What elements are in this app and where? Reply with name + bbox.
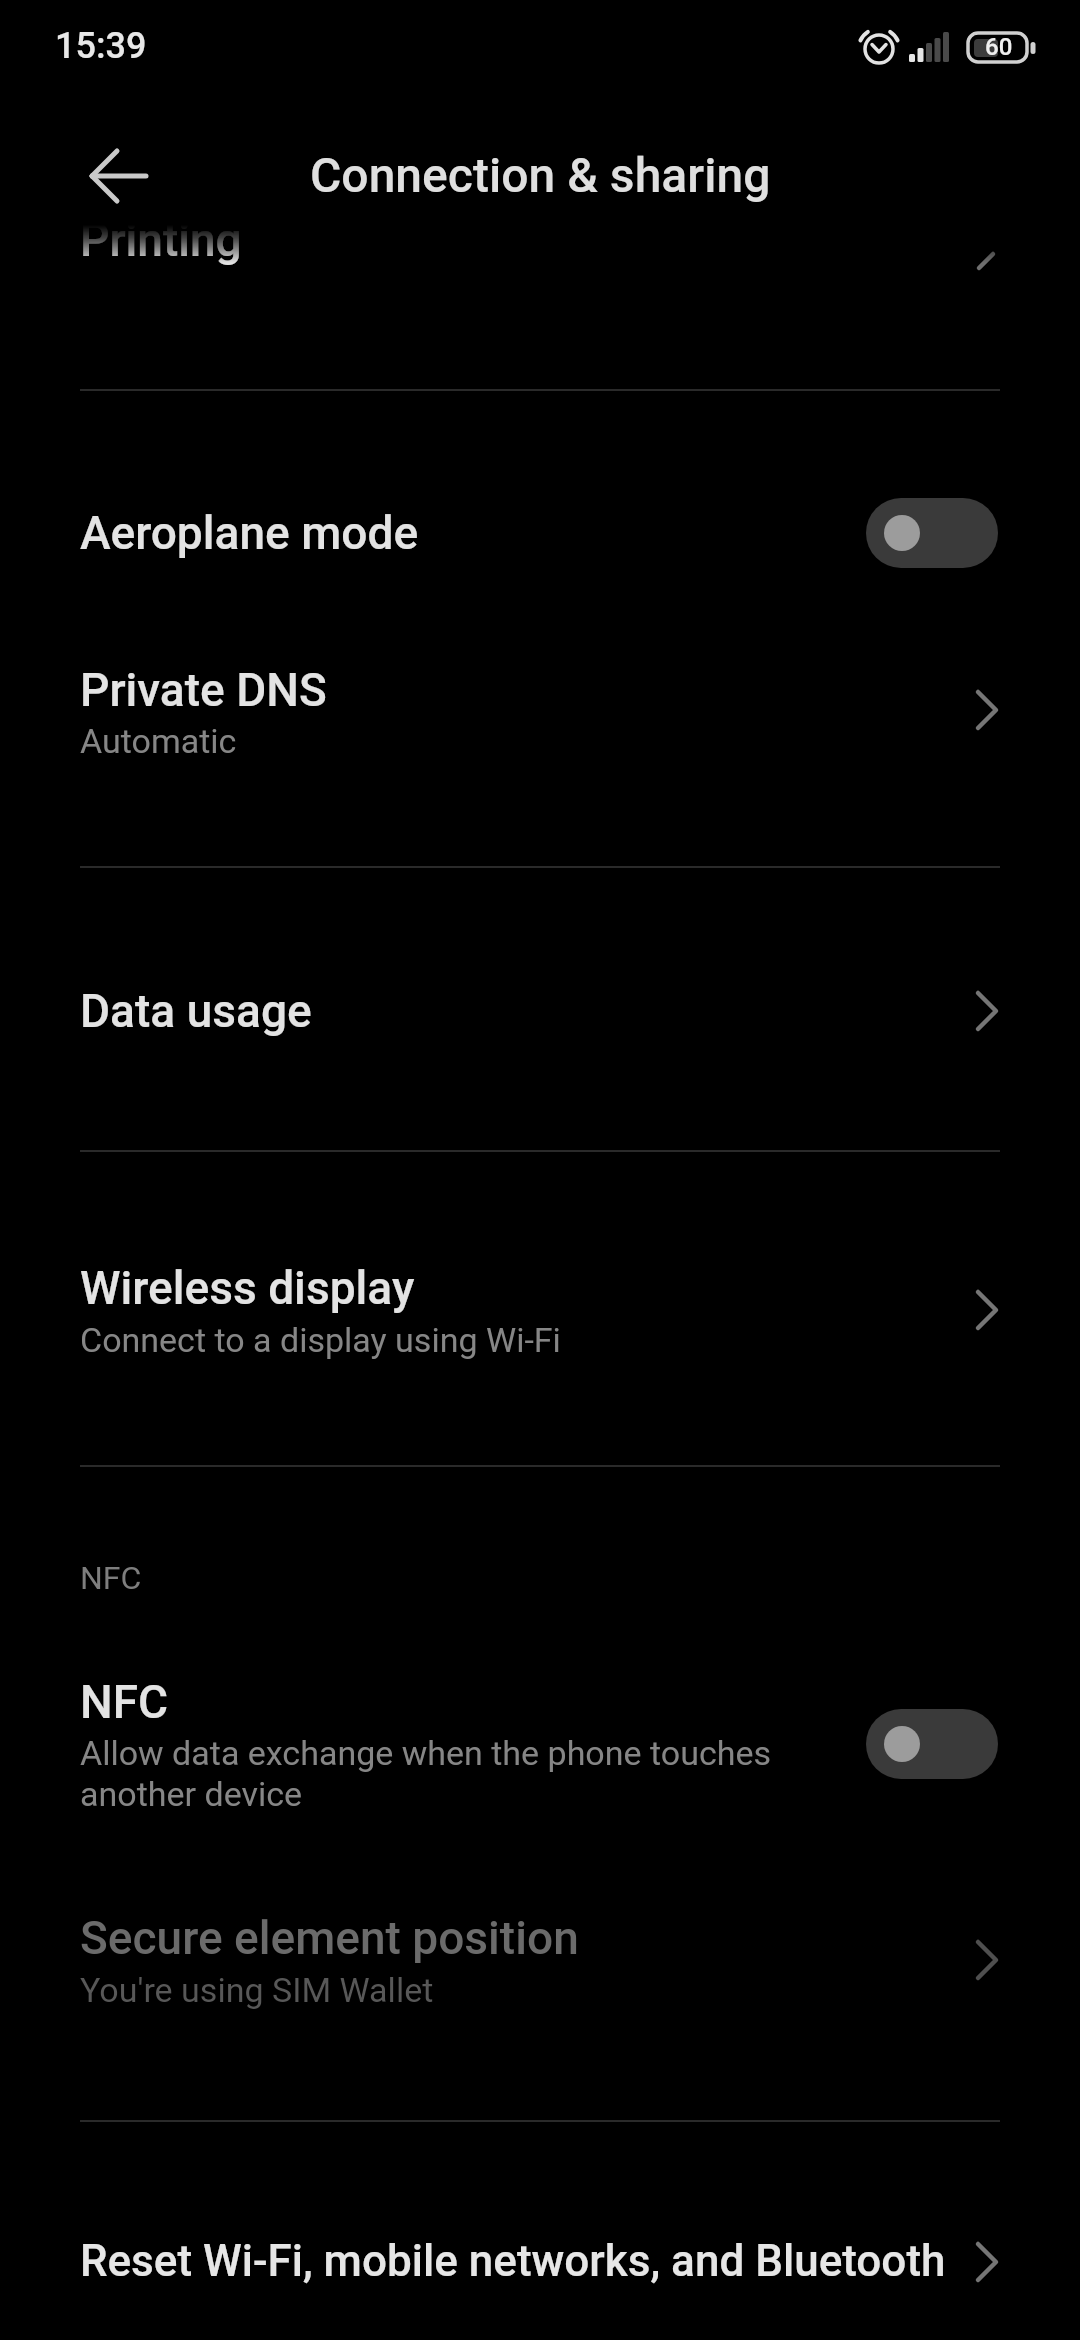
button[interactable] (0, 1150, 1080, 1465)
staticText: Connection & sharing (310, 147, 771, 203)
button[interactable] (0, 866, 1080, 1150)
staticText: Allow data exchange when the phone touch… (80, 1733, 860, 1815)
button[interactable] (866, 498, 998, 568)
staticText: Automatic (80, 721, 237, 761)
button[interactable] (0, 1625, 1080, 1855)
button[interactable] (0, 225, 1080, 389)
button[interactable] (60, 144, 170, 208)
staticText: Connect to a display using Wi-Fi (80, 1320, 561, 1360)
staticText: Secure element position (80, 1911, 579, 1965)
staticText: Private DNS (80, 663, 327, 717)
staticText: Wireless display (80, 1261, 415, 1315)
staticText: You're using SIM Wallet (80, 1970, 434, 2010)
staticText: Aeroplane mode (80, 506, 419, 560)
staticText: Reset Wi-Fi, mobile networks, and Blueto… (80, 2235, 946, 2287)
staticText: 15:39 (55, 25, 147, 67)
staticText: Data usage (80, 984, 312, 1038)
button[interactable] (0, 632, 1080, 866)
button[interactable] (866, 1709, 998, 1779)
staticText: NFC (80, 1675, 169, 1729)
button[interactable] (0, 2120, 1080, 2340)
staticText: Printing (80, 225, 242, 267)
button[interactable] (0, 389, 1080, 632)
staticText: 60 (985, 33, 1013, 61)
button[interactable] (0, 1855, 1080, 2120)
staticText: NFC (80, 1559, 142, 1597)
